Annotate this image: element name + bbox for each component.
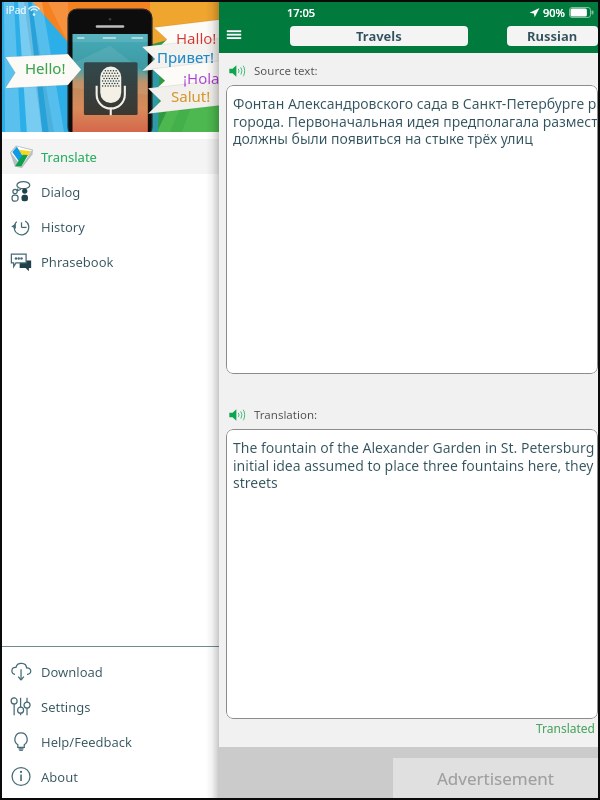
button[interactable]: Dialog — [2, 174, 219, 209]
staticText: Hallo! — [176, 28, 217, 48]
staticText: Download — [41, 663, 103, 681]
staticText: About — [41, 768, 78, 786]
staticText: Advertisement — [437, 767, 554, 790]
staticText: Help/Feedback — [41, 733, 133, 751]
button[interactable]: Russian — [507, 26, 598, 46]
button[interactable]: Menu — [219, 22, 253, 53]
button[interactable]: History — [2, 209, 219, 244]
staticText: Source text: — [254, 63, 318, 79]
staticText: Russian — [527, 27, 578, 45]
button[interactable]: Advertisement — [393, 758, 598, 798]
button[interactable]: Phrasebook — [2, 244, 219, 279]
staticText: Hello! — [25, 58, 66, 78]
staticText: History — [41, 218, 85, 236]
staticText: Travels — [356, 27, 402, 45]
staticText: Фонтан Александровского сада в Санкт-Пет… — [233, 94, 598, 148]
button[interactable]: Listen — [229, 407, 245, 423]
staticText: The fountain of the Alexander Garden in … — [233, 438, 598, 492]
button[interactable]: About — [2, 759, 219, 794]
staticText: Phrasebook — [41, 253, 114, 271]
staticText: Dialog — [41, 183, 81, 201]
staticText: 90% — [543, 5, 565, 20]
button[interactable]: Settings — [2, 689, 219, 724]
staticText: iPad — [6, 3, 27, 17]
button[interactable]: Translate — [2, 139, 219, 174]
button[interactable]: Help/Feedback — [2, 724, 219, 759]
staticText: Привет! — [157, 47, 215, 67]
button[interactable]: Travels — [290, 26, 468, 46]
staticText: ¡Hola! — [183, 68, 219, 88]
button[interactable]: Listen — [229, 63, 245, 79]
staticText: Translated — [536, 720, 595, 736]
staticText: Translation: — [254, 407, 318, 423]
staticText: Salut! — [171, 86, 211, 106]
staticText: Translate — [41, 148, 97, 166]
button[interactable]: Download — [2, 654, 219, 689]
staticText: 17:05 — [287, 5, 316, 20]
staticText: Settings — [41, 698, 91, 716]
